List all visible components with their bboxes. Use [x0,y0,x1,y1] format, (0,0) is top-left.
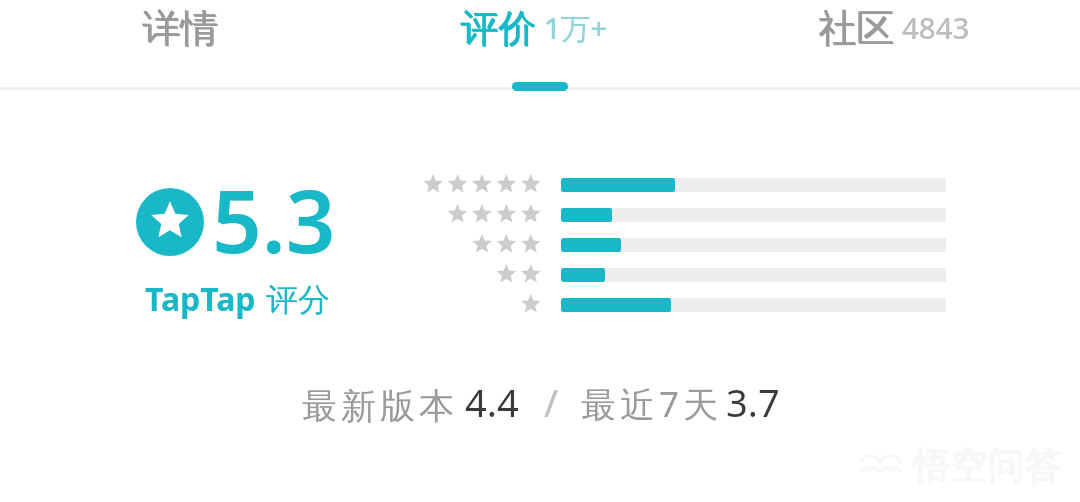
staticText: 3.7 [726,376,780,428]
staticText: 评分 [266,280,330,320]
staticText: 详情 [142,4,218,52]
button[interactable]: 详情 [0,0,360,89]
staticText: 评价 [460,4,536,52]
button[interactable]: 2 star reviews [423,260,946,290]
button[interactable]: 5 star reviews [423,170,946,200]
staticText: 最近7天 [581,380,723,428]
other: TapTap rating badge [136,188,204,256]
staticText: 社区 [819,5,895,53]
staticText: TapTap [145,277,256,321]
staticText: / [544,376,559,428]
staticText: 1万+ [544,7,608,47]
staticText: 社区 [818,4,894,52]
staticText: 评价 [461,5,537,53]
button[interactable]: 社区 [720,0,1080,89]
button[interactable]: 1 star reviews [423,290,946,320]
button[interactable]: 4 star reviews [423,200,946,230]
staticText: 悟空问答 [913,443,1061,490]
staticText: 4.4 [465,376,519,428]
staticText: 详情 [143,5,219,53]
staticText: 最新版本 [300,384,456,428]
staticText: 5.3 [212,160,336,278]
button[interactable]: 评价 [360,0,720,89]
staticText: 4843 [902,7,970,47]
button[interactable]: 3 star reviews [423,230,946,260]
